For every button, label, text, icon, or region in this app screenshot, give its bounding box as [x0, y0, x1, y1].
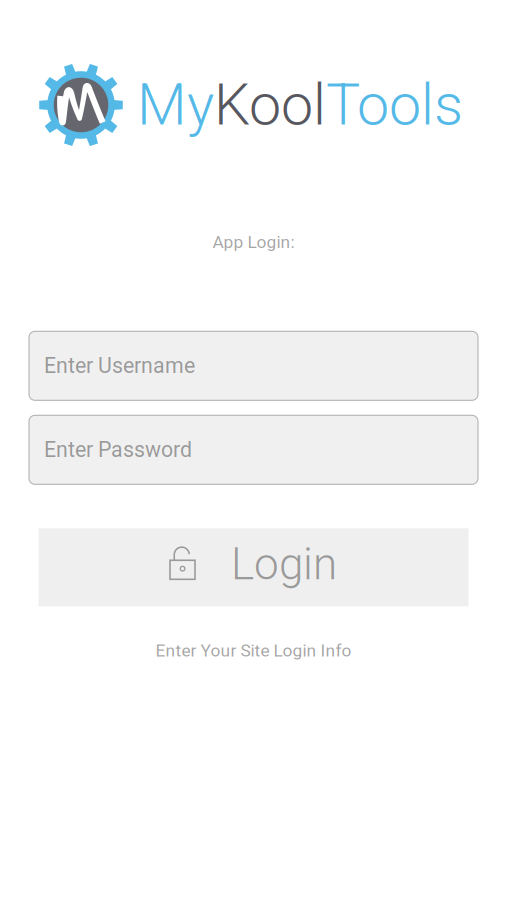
staticText: Enter Your Site Login Info: [155, 640, 351, 661]
staticText: Tools: [326, 71, 463, 139]
staticText: Enter Username: [44, 353, 195, 378]
staticText: Kool: [214, 71, 326, 139]
button[interactable]: Enter Password: [29, 415, 478, 484]
staticText: Login: [231, 538, 337, 590]
button[interactable]: Login: [38, 528, 468, 606]
staticText: App Login:: [212, 232, 294, 252]
button[interactable]: Enter Username: [29, 331, 478, 400]
staticText: Enter Password: [44, 437, 192, 462]
staticText: My: [137, 71, 214, 139]
